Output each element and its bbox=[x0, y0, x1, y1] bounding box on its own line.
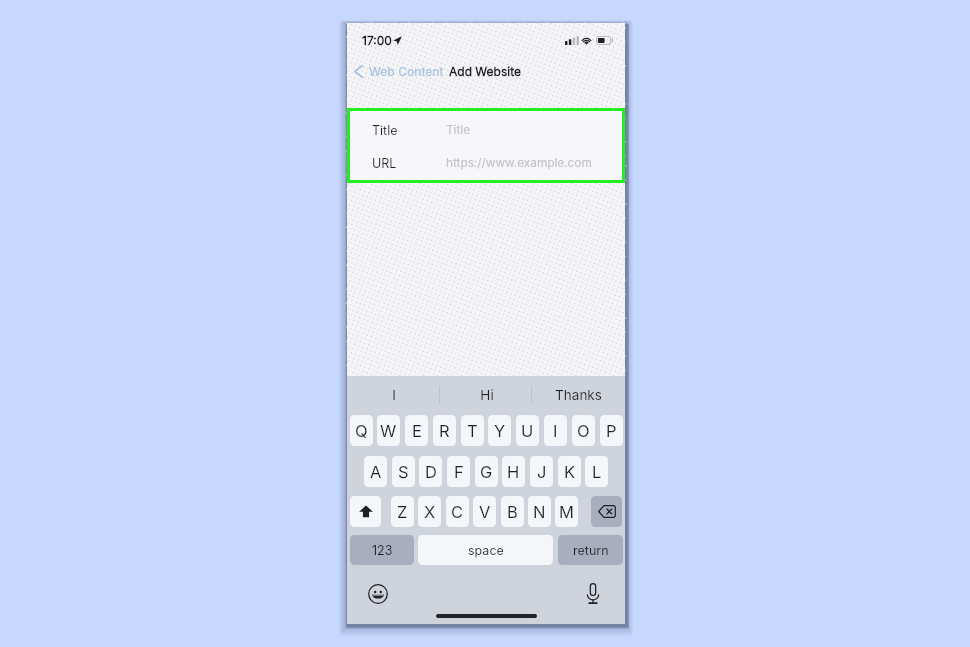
button[interactable]: O bbox=[572, 415, 595, 446]
button[interactable]: E bbox=[405, 415, 428, 446]
button[interactable]: Z bbox=[391, 496, 414, 527]
staticText: M bbox=[559, 502, 574, 522]
staticText: E bbox=[412, 421, 422, 441]
staticText: Title bbox=[372, 123, 398, 138]
button[interactable]: P bbox=[600, 415, 623, 446]
staticText: Thanks bbox=[555, 387, 602, 403]
button[interactable]: V bbox=[473, 496, 496, 527]
staticText: L bbox=[592, 462, 602, 482]
button[interactable]: W bbox=[377, 415, 400, 446]
button[interactable]: S bbox=[392, 456, 415, 487]
staticText: J bbox=[537, 462, 547, 482]
button[interactable]: M bbox=[555, 496, 578, 527]
staticText: P bbox=[606, 421, 617, 441]
button[interactable]: I bbox=[544, 415, 567, 446]
staticText: 123 bbox=[372, 543, 393, 558]
button[interactable]: space bbox=[418, 535, 553, 565]
button[interactable]: T bbox=[461, 415, 484, 446]
button[interactable]: J bbox=[530, 456, 553, 487]
button[interactable]: F bbox=[447, 456, 470, 487]
button[interactable]: C bbox=[446, 496, 469, 527]
button[interactable]: L bbox=[585, 456, 608, 487]
button[interactable]: Dictation bbox=[582, 581, 604, 606]
staticText: G bbox=[480, 462, 493, 482]
button[interactable]: Back to Web Content bbox=[350, 60, 445, 83]
staticText: T bbox=[467, 421, 478, 441]
button[interactable]: N bbox=[528, 496, 551, 527]
button[interactable]: X bbox=[418, 496, 441, 527]
staticText: space bbox=[468, 543, 504, 558]
staticText: Q bbox=[355, 421, 368, 441]
staticText: I bbox=[392, 387, 396, 403]
button[interactable]: Backspace bbox=[591, 496, 622, 527]
staticText: I bbox=[553, 421, 558, 441]
staticText: K bbox=[564, 462, 576, 482]
staticText: URL bbox=[372, 156, 397, 171]
button[interactable]: Y bbox=[488, 415, 511, 446]
button[interactable]: D bbox=[419, 456, 442, 487]
button[interactable]: U bbox=[516, 415, 539, 446]
staticText: D bbox=[425, 462, 437, 482]
button[interactable]: H bbox=[502, 456, 525, 487]
staticText: 17:00 bbox=[362, 33, 392, 48]
staticText: R bbox=[439, 421, 450, 441]
staticText: C bbox=[451, 502, 464, 522]
staticText: B bbox=[507, 502, 518, 522]
staticText: A bbox=[370, 462, 382, 482]
staticText: Add Website bbox=[449, 64, 521, 79]
staticText: S bbox=[398, 462, 409, 482]
staticText: Hi bbox=[480, 387, 494, 403]
staticText: V bbox=[479, 502, 491, 522]
button[interactable]: Emoji keyboard bbox=[366, 582, 390, 606]
staticText: U bbox=[521, 421, 534, 441]
button[interactable]: A bbox=[364, 456, 387, 487]
staticText: Y bbox=[494, 421, 506, 441]
staticText: O bbox=[577, 421, 590, 441]
staticText: F bbox=[454, 462, 464, 482]
staticText: X bbox=[424, 502, 436, 522]
staticText: Z bbox=[397, 502, 408, 522]
button[interactable]: B bbox=[501, 496, 524, 527]
button[interactable]: I bbox=[347, 376, 440, 414]
staticText: Web Content bbox=[369, 64, 444, 79]
button[interactable]: Q bbox=[350, 415, 373, 446]
button[interactable]: G bbox=[475, 456, 498, 487]
button[interactable]: 123 bbox=[350, 535, 414, 565]
staticText: return bbox=[573, 543, 609, 558]
staticText: Title bbox=[446, 123, 471, 137]
button[interactable]: URL bbox=[350, 146, 622, 180]
staticText: H bbox=[507, 462, 520, 482]
button[interactable]: Hi bbox=[440, 376, 533, 414]
button[interactable]: Title bbox=[350, 113, 622, 147]
staticText: N bbox=[533, 502, 546, 522]
button[interactable]: K bbox=[558, 456, 581, 487]
button[interactable]: return bbox=[558, 535, 623, 565]
button[interactable]: R bbox=[433, 415, 456, 446]
button[interactable]: Shift bbox=[350, 496, 381, 527]
button[interactable]: Thanks bbox=[532, 376, 625, 414]
staticText: https://www.example.com bbox=[446, 156, 592, 170]
staticText: W bbox=[380, 421, 397, 441]
